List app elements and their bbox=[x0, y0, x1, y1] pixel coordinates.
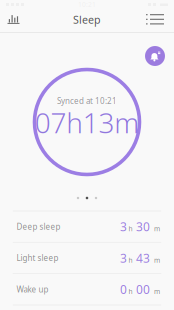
staticText: 07h13m bbox=[35, 104, 139, 141]
staticText: h bbox=[128, 287, 132, 296]
staticText: m bbox=[154, 224, 160, 233]
staticText: 3 bbox=[120, 219, 127, 234]
staticText: 0 bbox=[120, 281, 127, 297]
staticText: h bbox=[128, 256, 132, 264]
staticText: Sleep bbox=[73, 12, 101, 27]
button[interactable]: Sleep alarm bbox=[145, 46, 165, 66]
staticText: 30 bbox=[136, 219, 150, 234]
staticText: Deep sleep bbox=[16, 221, 60, 232]
staticText: 43 bbox=[136, 250, 150, 266]
staticText: m bbox=[154, 287, 160, 296]
staticText: h bbox=[128, 224, 132, 233]
staticText: Synced at 10:21 bbox=[57, 96, 117, 106]
staticText: Wake up bbox=[16, 284, 48, 295]
button[interactable]: Statistics bbox=[1, 8, 25, 30]
staticText: m bbox=[154, 256, 160, 264]
staticText: Light sleep bbox=[16, 253, 58, 263]
staticText: 3 bbox=[120, 250, 127, 266]
staticText: 00 bbox=[136, 281, 150, 297]
button[interactable]: Menu bbox=[140, 8, 170, 31]
